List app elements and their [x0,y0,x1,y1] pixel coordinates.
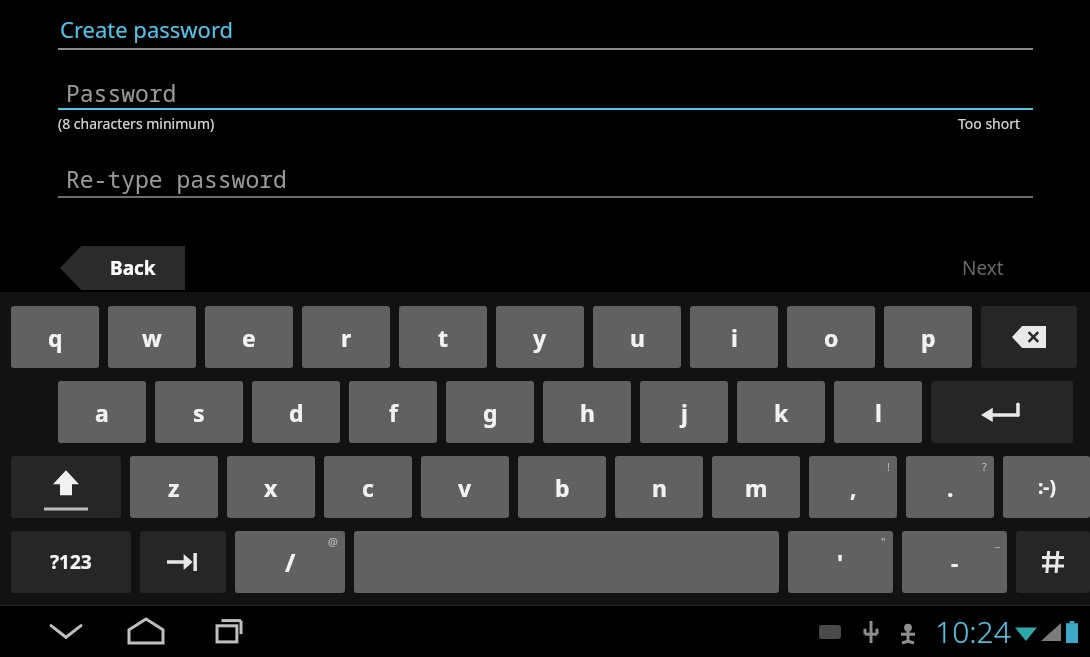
staticText: l [875,397,882,428]
button[interactable]: o [787,306,875,368]
button[interactable]: Keyboard settings [1016,531,1090,593]
button[interactable]: e [205,306,293,368]
staticText: e [242,322,256,353]
staticText: Next [962,255,1004,281]
button[interactable]: x [227,456,315,518]
staticText: q [48,322,63,353]
staticText: z [168,472,180,503]
button[interactable]: z [130,456,218,518]
staticText: ! [887,459,890,474]
staticText: _ [995,534,1000,549]
button[interactable]: l [834,381,922,443]
button[interactable]: c [324,456,412,518]
staticText: p [921,322,936,353]
staticText: Create password [60,14,234,44]
staticText: s [193,397,205,428]
staticText: ' [837,547,844,578]
button[interactable]: t [399,306,487,368]
button[interactable]: Tab [140,531,226,593]
staticText: c [362,472,374,503]
staticText: - [951,547,959,578]
button[interactable]: Back [60,246,185,290]
button[interactable]: ?123 [11,531,131,593]
button[interactable]: q [11,306,99,368]
button[interactable]: s [155,381,243,443]
button[interactable]: Next [930,246,1035,290]
button[interactable]: p [884,306,972,368]
button[interactable]: n [615,456,703,518]
staticText: / [285,545,296,579]
staticText: w [142,322,162,353]
staticText: v [458,472,472,503]
button[interactable]: g [446,381,534,443]
button[interactable]: . [906,456,994,518]
staticText: k [774,397,789,428]
button[interactable]: r [302,306,390,368]
staticText: " [881,534,886,549]
button[interactable]: Shift [11,456,121,518]
button[interactable]: w [108,306,196,368]
staticText: t [438,322,448,353]
staticText: @ [328,534,338,549]
button[interactable]: Recent apps [190,605,262,657]
staticText: o [824,322,839,353]
staticText: n [652,472,667,503]
staticText: (8 characters minimum) [58,114,215,133]
staticText: d [289,397,304,428]
button[interactable]: Hide keyboard [30,605,102,657]
staticText: Password [66,77,177,108]
button[interactable]: - [902,531,1007,593]
button[interactable]: y [496,306,584,368]
staticText: Back [110,255,156,281]
button[interactable]: v [421,456,509,518]
button[interactable]: b [518,456,606,518]
button[interactable]: Delete [981,306,1077,368]
button[interactable]: a [58,381,146,443]
button[interactable]: u [593,306,681,368]
button[interactable]: Enter [931,381,1073,443]
staticText: ? [982,459,987,474]
staticText: i [731,322,738,353]
button[interactable]: / [235,531,345,593]
staticText: j [681,397,688,428]
staticText: h [580,397,595,428]
staticText: :-) [1038,474,1056,500]
staticText: g [483,397,498,428]
staticText: m [745,472,768,503]
button[interactable]: ' [788,531,893,593]
button[interactable]: m [712,456,800,518]
staticText: Re-type password [66,163,287,194]
staticText: f [389,397,398,428]
staticText: ?123 [50,549,92,575]
staticText: a [95,397,109,428]
button[interactable]: d [252,381,340,443]
button[interactable]: :-) [1003,456,1090,518]
button[interactable]: k [737,381,825,443]
button[interactable]: i [690,306,778,368]
staticText: y [533,322,547,353]
staticText: r [341,322,352,353]
staticText: u [630,322,645,353]
button[interactable]: , [809,456,897,518]
staticText: , [850,472,857,503]
staticText: 10:24 [935,611,1011,652]
button[interactable]: f [349,381,437,443]
button[interactable]: j [640,381,728,443]
staticText: Too short [958,114,1021,133]
button[interactable]: Home [110,605,182,657]
staticText: x [264,472,278,503]
staticText: b [555,472,570,503]
staticText: . [947,472,954,503]
button[interactable]: h [543,381,631,443]
